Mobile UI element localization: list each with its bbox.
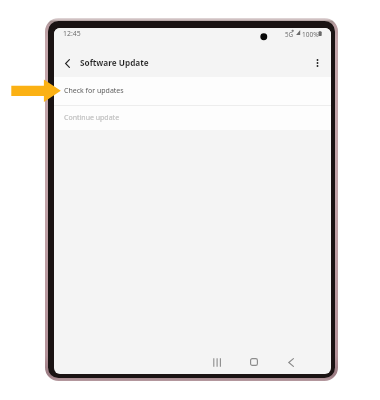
button[interactable]: Navigate back — [57, 53, 77, 73]
button[interactable]: Back — [280, 351, 302, 373]
button[interactable]: Home — [243, 351, 265, 373]
staticText: 5G — [285, 30, 294, 38]
staticText: 12:45 — [63, 29, 81, 38]
staticText: 100% — [302, 30, 319, 39]
staticText: Software Update — [80, 57, 149, 68]
staticText: Continue update — [64, 113, 120, 123]
button[interactable]: More options — [307, 53, 327, 73]
button[interactable]: Continue update — [54, 105, 331, 130]
staticText: Check for updates — [64, 86, 124, 96]
button[interactable]: Check for updates — [54, 77, 331, 104]
button[interactable]: Recent apps — [206, 351, 228, 373]
